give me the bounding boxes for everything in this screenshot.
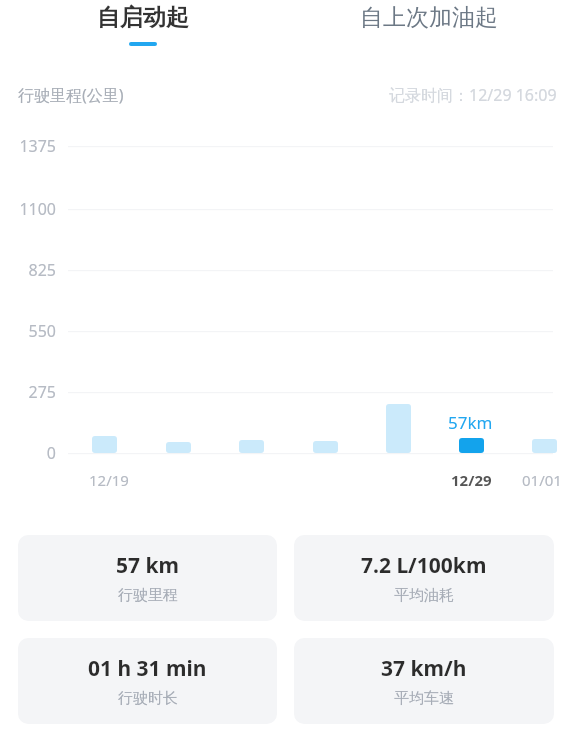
staticText: 行驶里程 bbox=[118, 586, 178, 605]
staticText: 行驶时长 bbox=[118, 689, 178, 708]
button[interactable]: 自启动起 bbox=[0, 0, 286, 52]
staticText: 平均油耗 bbox=[394, 586, 454, 605]
staticText: 550 bbox=[28, 320, 56, 342]
staticText: 01 h 31 min bbox=[88, 654, 207, 683]
staticText: 37 km/h bbox=[381, 654, 467, 683]
button[interactable]: 01 h 31 min bbox=[18, 638, 277, 724]
staticText: 记录时间：12/29 16:09 bbox=[389, 84, 557, 106]
staticText: 自上次加油起 bbox=[360, 3, 498, 32]
staticText: 825 bbox=[28, 259, 56, 281]
staticText: 自启动起 bbox=[97, 3, 189, 32]
button[interactable]: 自上次加油起 bbox=[286, 0, 572, 52]
staticText: 57 km bbox=[116, 551, 179, 580]
staticText: 行驶里程(公里) bbox=[18, 84, 124, 106]
staticText: 1100 bbox=[19, 198, 56, 220]
staticText: 1375 bbox=[19, 135, 56, 157]
staticText: 平均车速 bbox=[394, 689, 454, 708]
staticText: 01/01 bbox=[522, 470, 562, 490]
staticText: 7.2 L/100km bbox=[361, 551, 487, 580]
button[interactable]: 7.2 L/100km bbox=[294, 535, 554, 621]
button[interactable]: 37 km/h bbox=[294, 638, 554, 724]
staticText: 275 bbox=[28, 381, 56, 403]
staticText: 57km bbox=[448, 411, 493, 434]
button[interactable]: 57 km bbox=[18, 535, 277, 621]
staticText: 12/19 bbox=[89, 470, 129, 490]
staticText: 12/29 bbox=[451, 470, 492, 490]
staticText: 0 bbox=[46, 442, 56, 464]
